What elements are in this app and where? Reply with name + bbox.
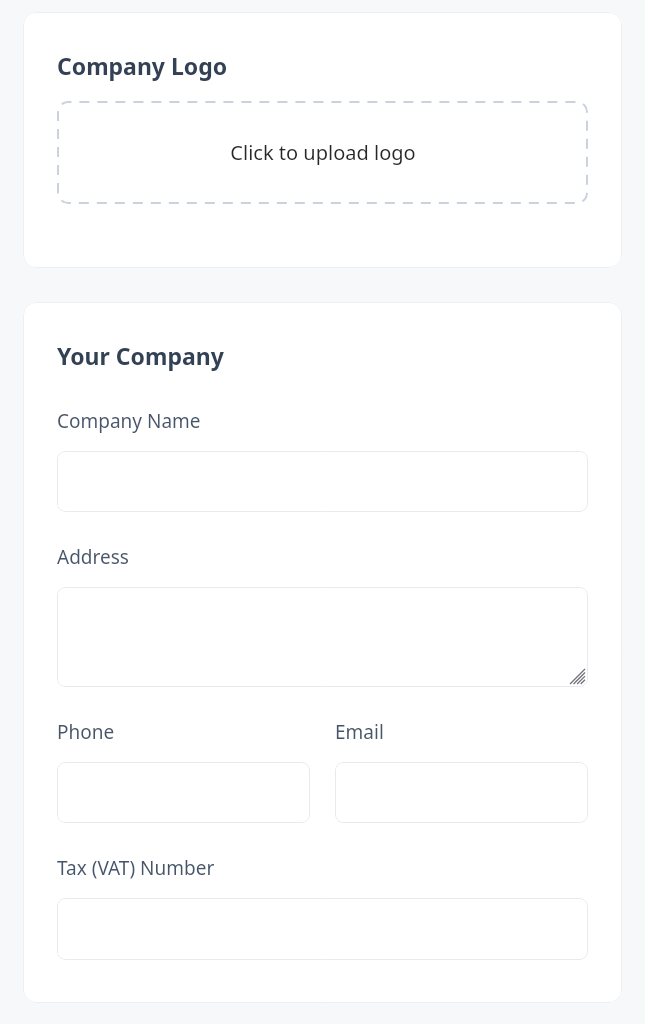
staticText: Your Company bbox=[57, 340, 224, 371]
staticText: Company Logo bbox=[57, 50, 228, 81]
staticText: Email bbox=[335, 719, 384, 745]
staticText: Tax (VAT) Number bbox=[57, 855, 215, 881]
staticText: Click to upload logo bbox=[230, 139, 416, 166]
button[interactable]: Click to upload logo bbox=[57, 101, 588, 204]
staticText: Address bbox=[57, 544, 129, 570]
button[interactable]: Text input bbox=[57, 587, 588, 687]
staticText: Company Name bbox=[57, 408, 201, 434]
staticText: Phone bbox=[57, 719, 115, 745]
button[interactable]: Text input bbox=[335, 762, 588, 823]
button[interactable]: Text input bbox=[57, 451, 588, 512]
button[interactable]: Text input bbox=[57, 898, 588, 960]
button[interactable]: Text input bbox=[57, 762, 310, 823]
